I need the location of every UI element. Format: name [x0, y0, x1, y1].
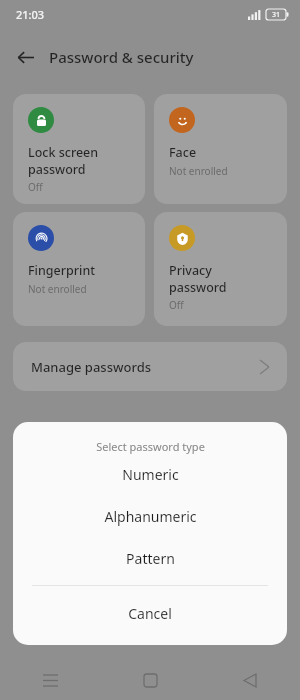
- staticText: Off: [169, 298, 184, 312]
- button[interactable]: Lock screen password: [13, 94, 145, 204]
- button[interactable]: Numeric: [13, 454, 287, 495]
- staticText: 21:03: [16, 7, 45, 22]
- button[interactable]: Home: [100, 660, 200, 700]
- staticText: Fingerprint: [28, 262, 96, 279]
- button[interactable]: Back: [200, 660, 300, 700]
- staticText: Select password type: [96, 439, 205, 454]
- staticText: Not enrolled: [28, 282, 87, 296]
- staticText: Cancel: [128, 604, 172, 623]
- staticText: Off: [28, 180, 43, 194]
- staticText: Lock screen password: [28, 144, 99, 177]
- button[interactable]: Cancel: [13, 591, 287, 635]
- button[interactable]: Pattern: [13, 537, 287, 579]
- button[interactable]: Recent apps: [0, 660, 100, 700]
- staticText: Pattern: [126, 549, 175, 568]
- button[interactable]: Face: [154, 94, 287, 204]
- staticText: Face: [169, 144, 197, 161]
- staticText: Alphanumeric: [104, 507, 197, 526]
- button[interactable]: Back: [8, 40, 42, 74]
- button[interactable]: Manage passwords: [13, 342, 287, 391]
- button[interactable]: Fingerprint: [13, 212, 145, 326]
- staticText: Not enrolled: [169, 164, 228, 178]
- staticText: Password & security: [49, 47, 194, 67]
- staticText: Numeric: [122, 465, 179, 484]
- staticText: Privacy password: [169, 262, 227, 295]
- button[interactable]: Privacy password: [154, 212, 287, 326]
- staticText: Manage passwords: [31, 358, 260, 376]
- staticText: 31: [272, 10, 281, 20]
- button[interactable]: Alphanumeric: [13, 495, 287, 537]
